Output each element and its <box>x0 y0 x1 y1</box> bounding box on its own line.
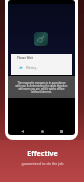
button[interactable]: Home <box>38 127 47 135</box>
button[interactable]: App icon <box>34 32 48 46</box>
staticText: The magnetic compass is in accordance wi… <box>15 81 68 93</box>
staticText: Please Wait <box>17 56 33 60</box>
staticText: Effective <box>27 149 58 159</box>
staticText: guaranteed to do the job <box>21 161 64 166</box>
button[interactable]: Back <box>18 127 27 135</box>
staticText: Waiting... <box>26 66 39 70</box>
button[interactable]: Recent apps <box>57 127 66 135</box>
